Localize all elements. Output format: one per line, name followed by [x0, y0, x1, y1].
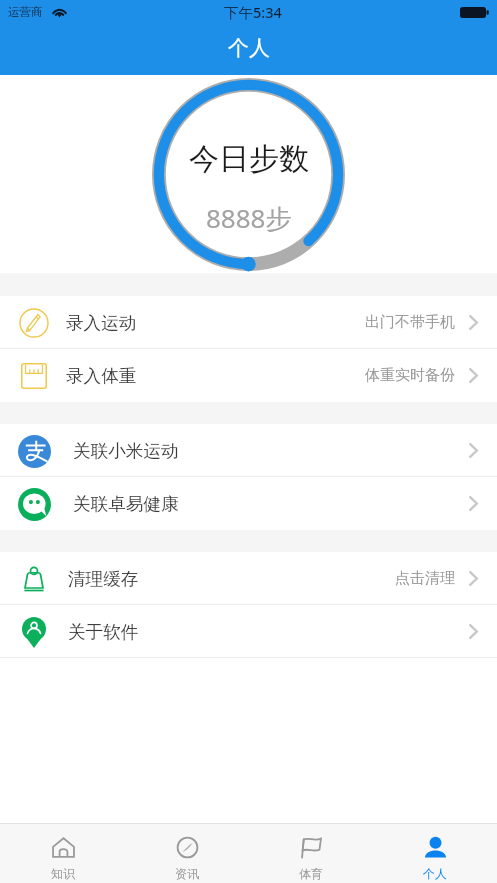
button[interactable]: 清理缓存 — [0, 552, 497, 605]
button[interactable]: 录入运动 — [0, 296, 497, 349]
button[interactable]: 关联卓易健康 — [0, 477, 497, 530]
staticText: 资讯 — [175, 866, 199, 881]
staticText: 体重实时备份 — [365, 366, 455, 385]
staticText: 运营商 — [8, 5, 43, 19]
staticText: 个人 — [228, 35, 270, 61]
staticText: 下午5:34 — [224, 2, 282, 22]
staticText: 关联卓易健康 — [73, 493, 179, 515]
staticText: 关于软件 — [68, 621, 139, 643]
staticText: 体育 — [299, 866, 323, 881]
staticText: 知识 — [51, 866, 75, 881]
button[interactable]: 关联小米运动 — [0, 424, 497, 477]
staticText: 出门不带手机 — [365, 313, 455, 332]
button[interactable]: 资讯 — [125, 824, 249, 883]
button[interactable]: 个人 — [373, 824, 497, 883]
staticText: 8888步 — [206, 200, 292, 236]
staticText: 录入运动 — [66, 312, 137, 334]
staticText: 录入体重 — [66, 365, 137, 387]
staticText: 点击清理 — [395, 569, 455, 588]
staticText: 清理缓存 — [68, 568, 139, 590]
staticText: 关联小米运动 — [73, 440, 179, 462]
staticText: 今日步数 — [189, 140, 309, 178]
staticText: 个人 — [423, 866, 447, 881]
button[interactable]: 知识 — [0, 824, 125, 883]
button[interactable]: 录入体重 — [0, 349, 497, 402]
button[interactable]: 体育 — [249, 824, 373, 883]
button[interactable]: 关于软件 — [0, 605, 497, 658]
